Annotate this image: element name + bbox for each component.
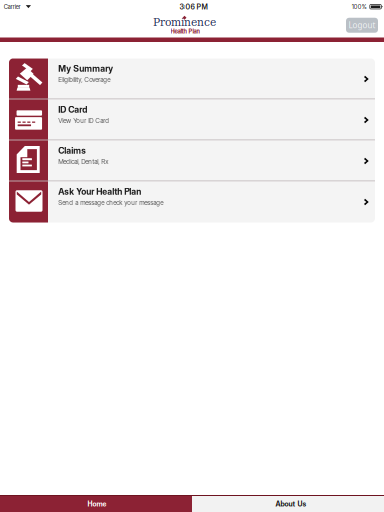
button[interactable]: My Summary (9, 58, 375, 99)
staticText: Plan (188, 28, 199, 35)
button[interactable]: Logout (346, 18, 378, 33)
staticText: ID Card (58, 104, 87, 115)
staticText: Logout (348, 20, 375, 30)
button[interactable]: Ask Your Health Plan (9, 181, 375, 222)
staticText: Send a message check your message (58, 199, 163, 206)
button[interactable]: ID Card (9, 99, 375, 140)
button[interactable]: Claims (9, 140, 375, 181)
button[interactable]: Home (0, 496, 192, 512)
staticText: 3:06 PM (179, 3, 207, 11)
staticText: Medical, Dental, Rx (58, 158, 108, 165)
staticText: Ask Your Health Plan (58, 186, 141, 197)
staticText: My Summary (58, 63, 113, 74)
staticText: View Your ID Card (58, 117, 109, 124)
staticText: Carrier (4, 3, 21, 10)
staticText: About Us (275, 500, 306, 508)
staticText: Prominence (153, 16, 216, 28)
staticText: Home (87, 500, 106, 508)
staticText: Claims (58, 145, 86, 156)
button[interactable]: About Us (192, 496, 384, 512)
staticText: Health (170, 28, 186, 35)
staticText: 100% (352, 3, 367, 10)
staticText: Eligibility, Coverage (58, 76, 110, 83)
